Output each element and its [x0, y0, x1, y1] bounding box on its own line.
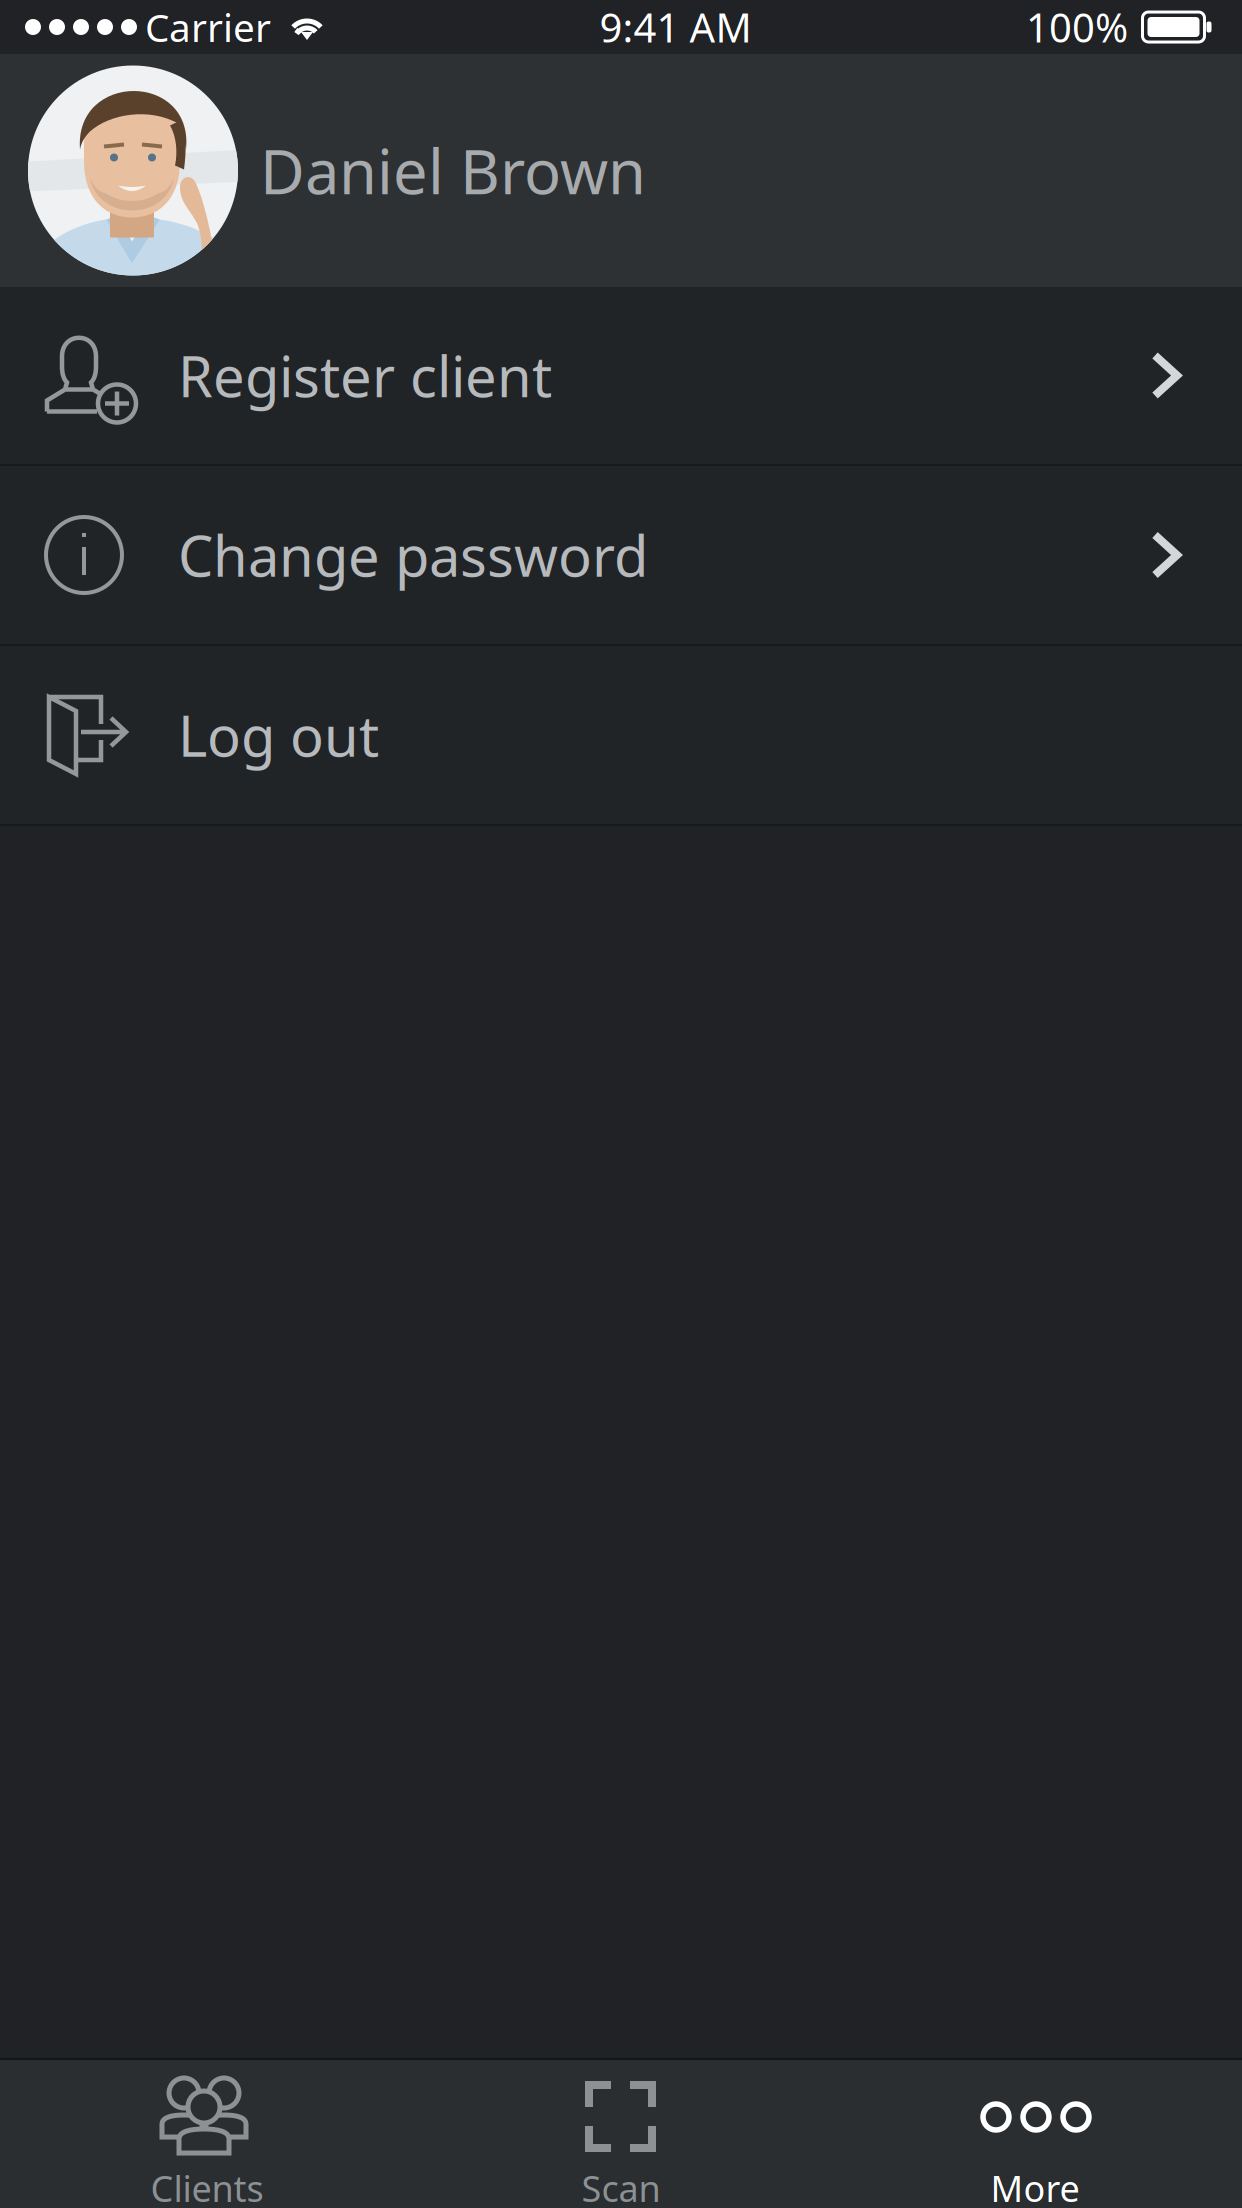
button[interactable]: Register client [0, 287, 1242, 464]
staticText: Daniel Brown [260, 130, 646, 211]
staticText: Register client [178, 338, 552, 413]
staticText: Log out [178, 698, 379, 772]
staticText: More [990, 2164, 1079, 2208]
staticText: Clients [150, 2164, 263, 2208]
staticText: Change password [178, 518, 648, 592]
button[interactable]: Clients [0, 2058, 414, 2208]
button[interactable]: More [828, 2058, 1242, 2208]
staticText: 9:41 AM [599, 0, 751, 53]
staticText: Scan [581, 2164, 660, 2208]
button[interactable]: Scan [414, 2058, 828, 2208]
staticText: Carrier [145, 1, 271, 53]
button[interactable]: Log out [0, 646, 1242, 824]
button[interactable]: Change password [0, 466, 1242, 644]
staticText: 100% [1026, 0, 1128, 53]
